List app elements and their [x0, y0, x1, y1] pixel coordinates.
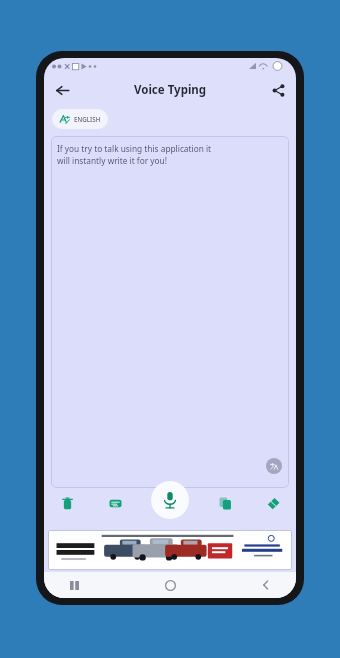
- button[interactable]: Keyboard: [102, 490, 128, 516]
- button[interactable]: Back: [47, 75, 77, 105]
- button[interactable]: Clear: [260, 490, 286, 516]
- staticText: If you try to talk using this applicatio…: [57, 143, 212, 154]
- button[interactable]: Home: [158, 573, 182, 597]
- button[interactable]: Translate: [266, 458, 282, 474]
- button[interactable]: Delete: [54, 490, 80, 516]
- button[interactable]: Start voice typing: [151, 481, 189, 519]
- staticText: will instantly write it for you!: [57, 155, 167, 166]
- button[interactable]: [48, 530, 292, 570]
- button[interactable]: If you try to talk using this applicatio…: [51, 136, 289, 488]
- staticText: Voice Typing: [134, 82, 207, 98]
- button[interactable]: Share: [264, 76, 292, 104]
- button[interactable]: Copy: [212, 490, 238, 516]
- button[interactable]: Back: [254, 573, 278, 597]
- button[interactable]: Recents: [62, 573, 86, 597]
- button[interactable]: ENGLISH: [52, 109, 108, 129]
- staticText: ENGLISH: [74, 115, 101, 123]
